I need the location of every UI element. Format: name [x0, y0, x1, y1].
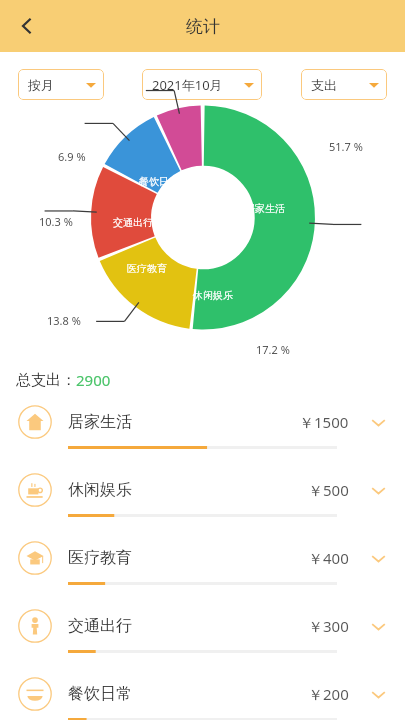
button[interactable]: 展开 居家生活: [365, 409, 391, 435]
staticText: 17.2 %: [256, 342, 290, 357]
staticText: 医疗教育: [68, 548, 132, 568]
staticText: ￥200: [308, 684, 349, 704]
staticText: 居家生活: [68, 412, 132, 432]
button[interactable]: 医疗教育: [0, 534, 405, 602]
staticText: 2900: [76, 370, 111, 390]
staticText: ￥400: [308, 548, 349, 568]
staticText: 支出: [311, 77, 337, 93]
staticText: 餐饮日常: [139, 175, 179, 188]
staticText: 按月: [28, 77, 54, 93]
button[interactable]: 按月: [18, 69, 104, 100]
button[interactable]: 展开 餐饮日常: [365, 681, 391, 707]
button[interactable]: 餐饮日常: [0, 670, 405, 720]
button[interactable]: 展开 休闲娱乐: [365, 477, 391, 503]
staticText: 休闲娱乐: [193, 289, 233, 302]
staticText: 交通出行: [113, 216, 153, 229]
staticText: ￥500: [308, 480, 349, 500]
staticText: 10.3 %: [39, 214, 73, 229]
staticText: 交通出行: [68, 616, 132, 636]
button[interactable]: 支出: [301, 69, 387, 100]
staticText: 2021年10月: [152, 76, 223, 94]
staticText: 6.9 %: [58, 149, 86, 164]
staticText: 统计: [186, 16, 220, 37]
button[interactable]: 展开 交通出行: [365, 613, 391, 639]
button[interactable]: 交通出行: [0, 602, 405, 670]
staticText: 13.8 %: [47, 313, 81, 328]
button[interactable]: Back: [4, 3, 50, 49]
button[interactable]: 2021年10月: [142, 69, 262, 100]
button[interactable]: 展开 医疗教育: [365, 545, 391, 571]
button[interactable]: 居家生活: [0, 398, 405, 466]
staticText: 51.7 %: [329, 139, 363, 154]
staticText: 总支出：: [16, 371, 76, 390]
staticText: 餐饮日常: [68, 684, 132, 704]
staticText: 居家生活: [245, 202, 285, 215]
staticText: 休闲娱乐: [68, 480, 132, 500]
staticText: ￥300: [308, 616, 349, 636]
staticText: ￥1500: [299, 412, 349, 432]
button[interactable]: 休闲娱乐: [0, 466, 405, 534]
staticText: 医疗教育: [127, 262, 167, 275]
